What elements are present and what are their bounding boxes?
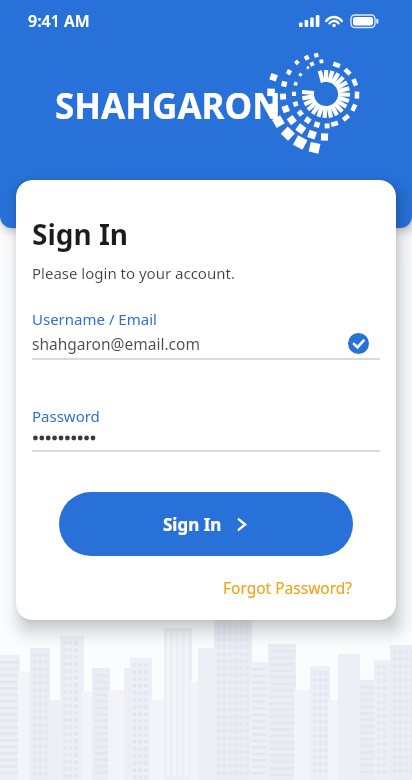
staticText: shahgaron@email.com — [32, 333, 348, 354]
staticText: Sign In — [163, 513, 222, 536]
button[interactable]: shahgaron@email.com — [32, 333, 380, 354]
staticText: 9:41 AM — [28, 10, 90, 32]
staticText: Password — [32, 406, 100, 426]
button[interactable]: Sign In — [59, 492, 353, 556]
staticText: SHAHGARON — [55, 82, 281, 130]
button[interactable]: Forgot Password? — [223, 577, 353, 598]
staticText: Sign In — [32, 215, 129, 253]
button[interactable] — [32, 434, 380, 442]
staticText: Username / Email — [32, 309, 157, 329]
staticText: Please login to your account. — [32, 263, 235, 283]
